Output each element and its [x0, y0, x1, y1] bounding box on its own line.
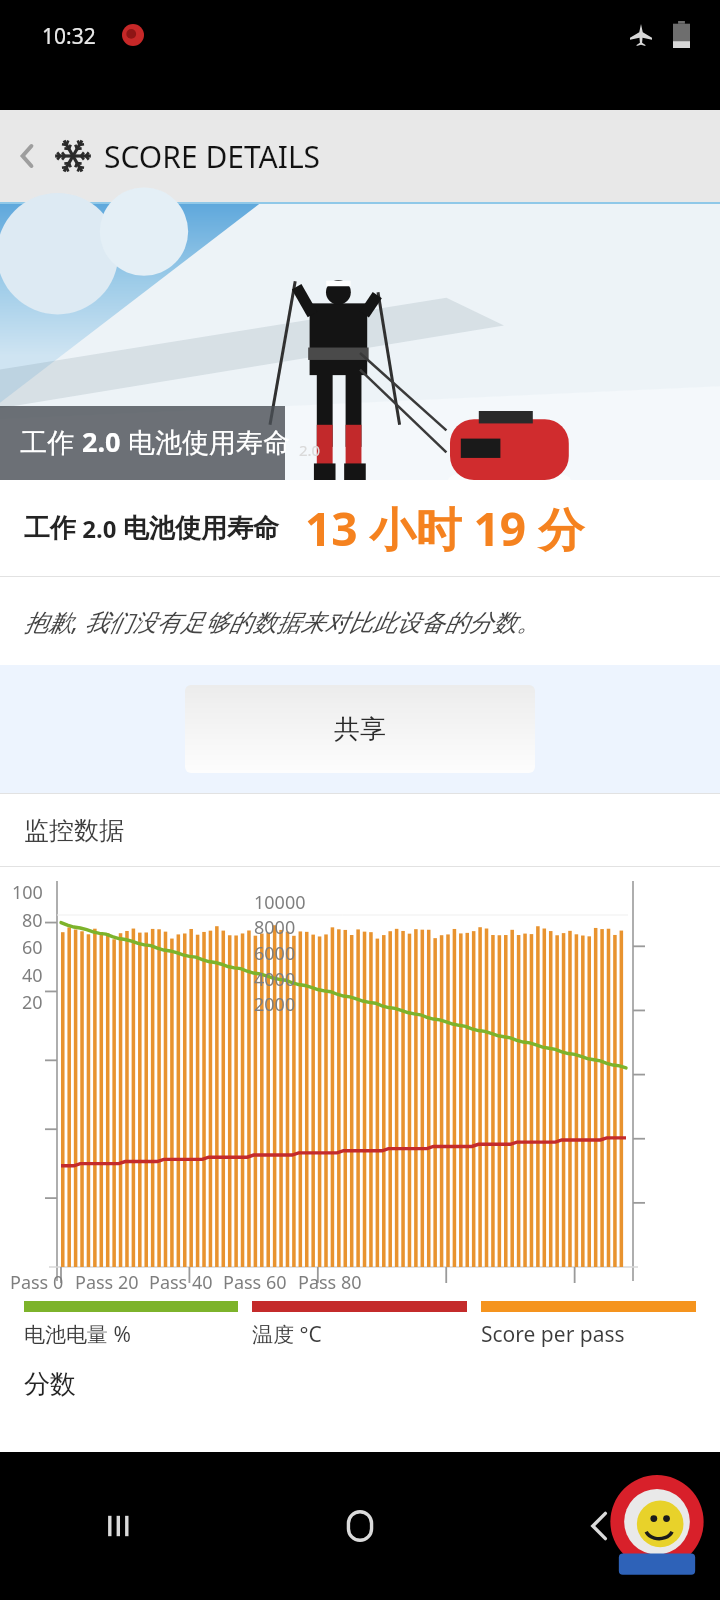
staticText: 温度 °C [252, 1320, 322, 1349]
staticText: 监控数据 [24, 815, 124, 846]
button[interactable]: Back [0, 129, 54, 183]
staticText: 抱歉, 我们没有足够的数据来对比此设备的分数。 [24, 605, 541, 638]
staticText: 电池使用寿命 [121, 423, 291, 460]
staticText: 2.0 [82, 423, 121, 460]
staticText: 10:32 [42, 22, 96, 51]
staticText: 工作 [24, 512, 76, 545]
staticText: 20 [22, 990, 43, 1015]
staticText: 10000 [254, 890, 306, 915]
staticText: 分数 [24, 1368, 76, 1401]
staticText: 2.0 [299, 440, 321, 460]
staticText: 60 [22, 935, 43, 960]
staticText: 2.0 [76, 512, 123, 545]
button[interactable]: Back [480, 1452, 720, 1600]
staticText: 40 [22, 963, 43, 988]
button[interactable]: 共享 [185, 685, 535, 773]
staticText: SCORE DETAILS [104, 136, 321, 177]
staticText: 6000 [254, 941, 296, 966]
staticText: Pass 20 [75, 1270, 139, 1295]
button[interactable]: Home [240, 1452, 480, 1600]
staticText: 80 [22, 908, 43, 933]
staticText: 电池电量 % [24, 1320, 131, 1349]
staticText: 电池使用寿命 [123, 512, 279, 545]
button[interactable]: Recent apps [0, 1452, 240, 1600]
staticText: Score per pass [481, 1320, 625, 1349]
staticText: Pass 40 [149, 1270, 213, 1295]
staticText: Pass 80 [298, 1270, 362, 1295]
staticText: Pass 0 [10, 1270, 64, 1295]
staticText: 4000 [254, 967, 296, 992]
staticText: 工作 [20, 423, 82, 460]
staticText: 共享 [334, 713, 386, 746]
staticText: 13 小时 19 分 [305, 497, 585, 560]
staticText: 2000 [254, 992, 296, 1017]
staticText: 100 [12, 880, 43, 905]
staticText: Pass 60 [223, 1270, 287, 1295]
staticText: 8000 [254, 915, 296, 940]
